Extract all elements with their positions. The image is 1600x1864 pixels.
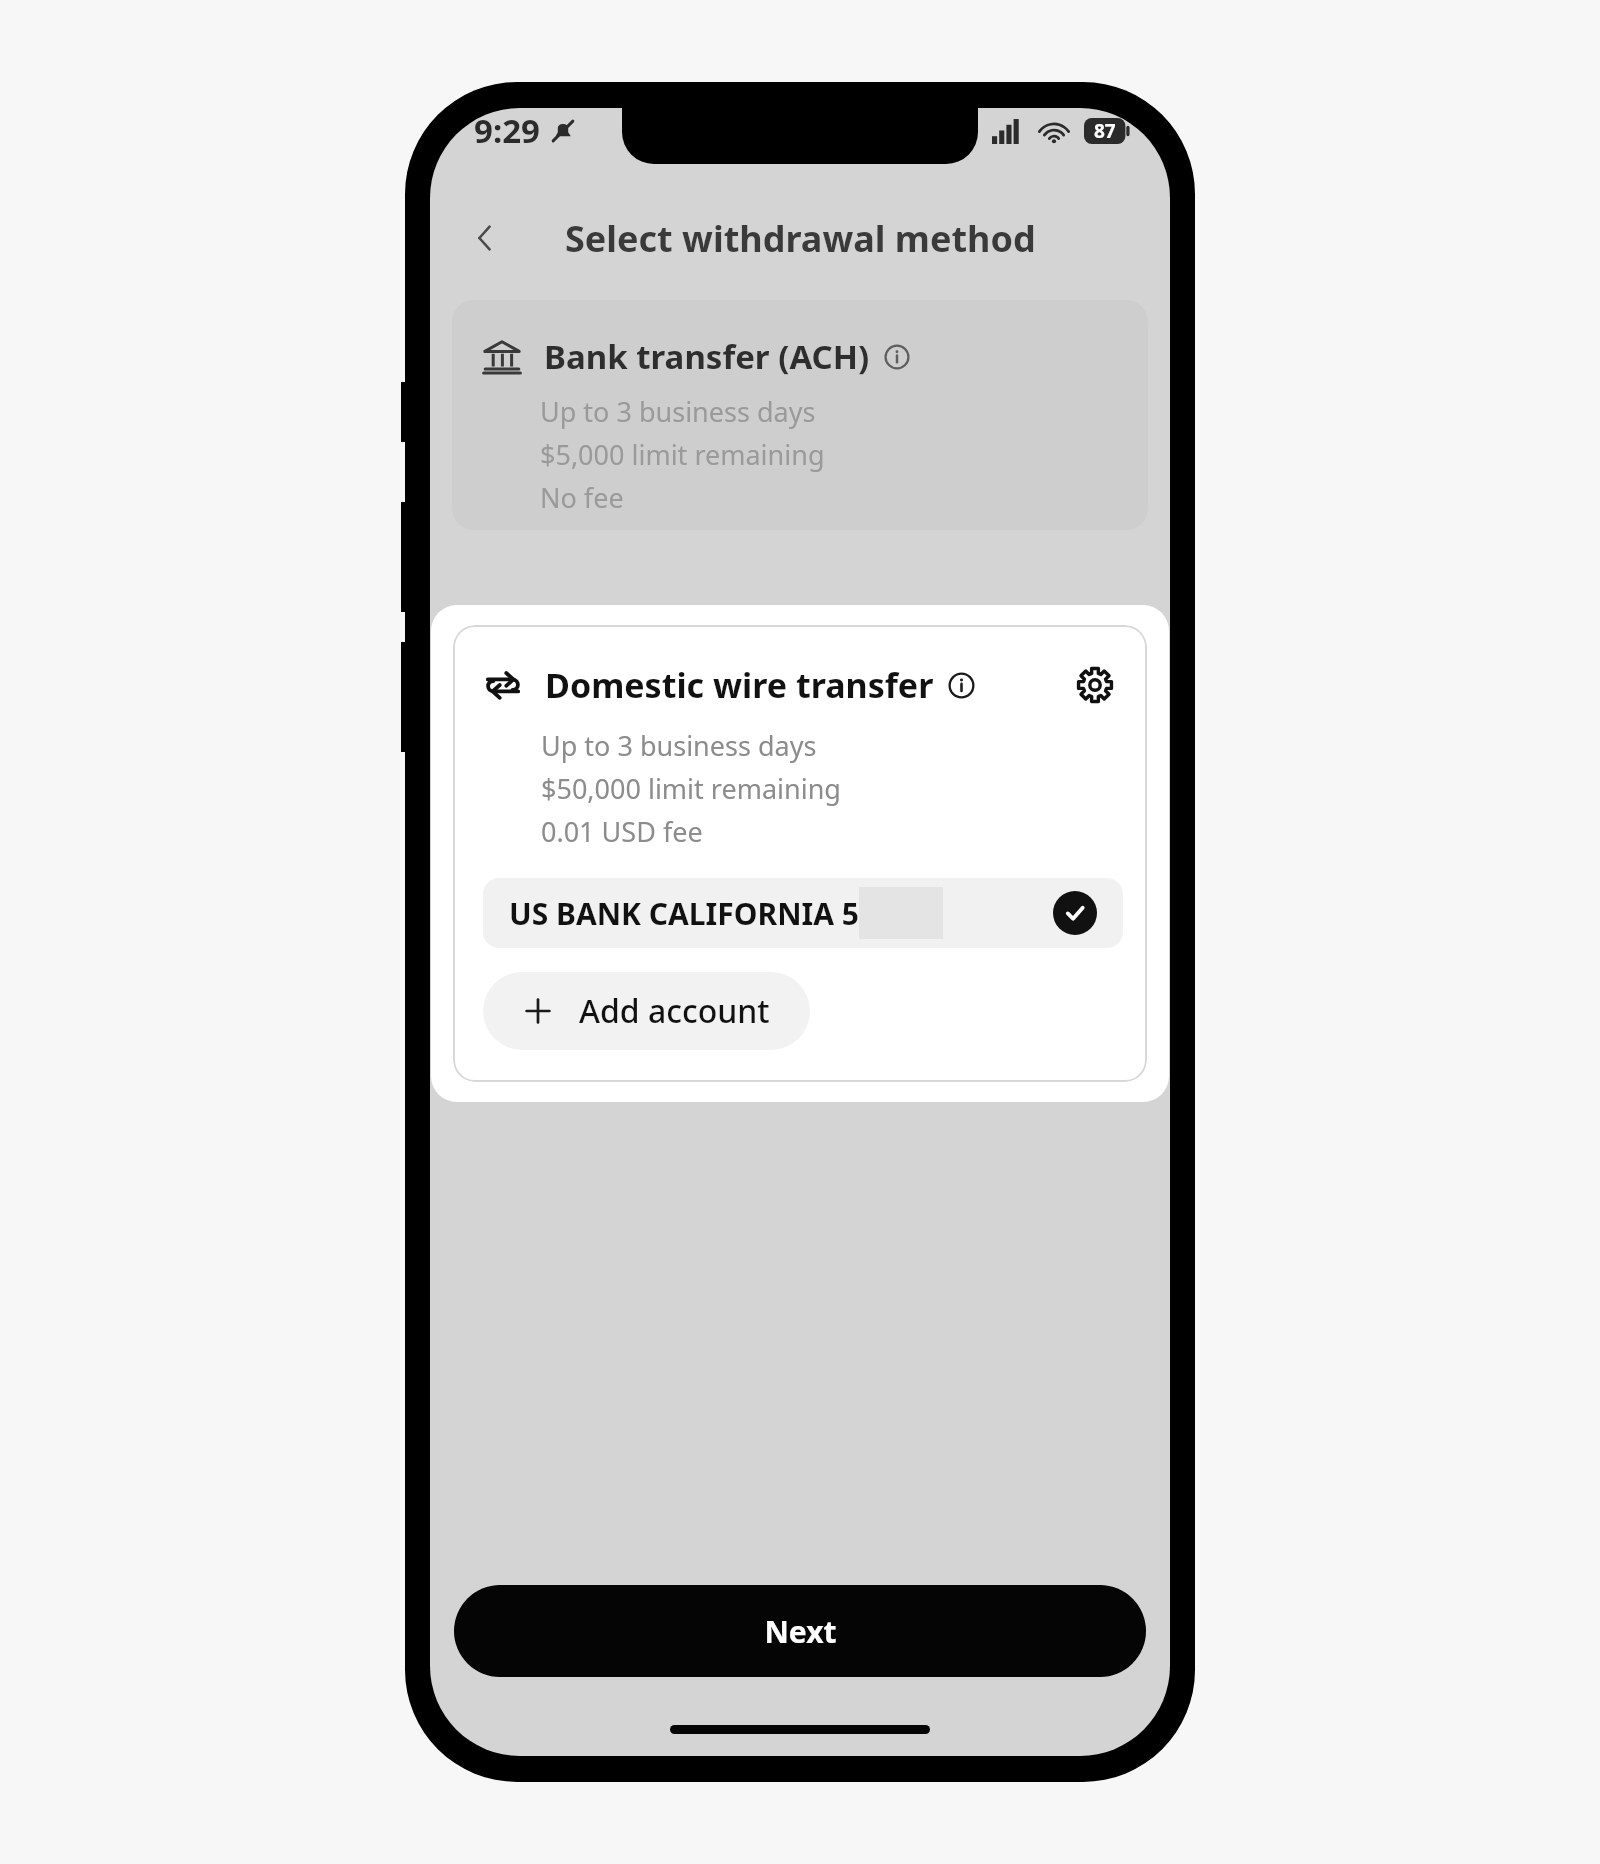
button[interactable]: Bank transfer (ACH) bbox=[452, 300, 1148, 530]
staticText: Add account bbox=[579, 989, 770, 1033]
button[interactable]: Back bbox=[454, 206, 518, 270]
staticText: 87 bbox=[1094, 118, 1116, 144]
staticText: Up to 3 business days bbox=[541, 727, 817, 764]
staticText: Up to 3 business days bbox=[540, 393, 816, 430]
staticText: Domestic wire transfer bbox=[545, 662, 934, 708]
staticText: No fee bbox=[540, 479, 624, 516]
button[interactable]: Settings bbox=[1067, 657, 1123, 713]
button[interactable]: Domestic wire transfer bbox=[453, 625, 1147, 1082]
staticText: 0.01 USD fee bbox=[541, 813, 703, 850]
button[interactable]: Next bbox=[454, 1585, 1146, 1677]
button[interactable]: Add account bbox=[483, 972, 810, 1050]
staticText: US BANK CALIFORNIA 5 bbox=[509, 893, 859, 934]
staticText: Bank transfer (ACH) bbox=[544, 334, 870, 379]
staticText: 9:29 bbox=[474, 108, 540, 153]
staticText: $50,000 limit remaining bbox=[541, 770, 841, 807]
button[interactable]: US BANK CALIFORNIA 5 bbox=[483, 878, 1123, 948]
staticText: Next bbox=[764, 1611, 837, 1652]
staticText: Select withdrawal method bbox=[565, 214, 1036, 263]
staticText: $5,000 limit remaining bbox=[540, 436, 825, 473]
